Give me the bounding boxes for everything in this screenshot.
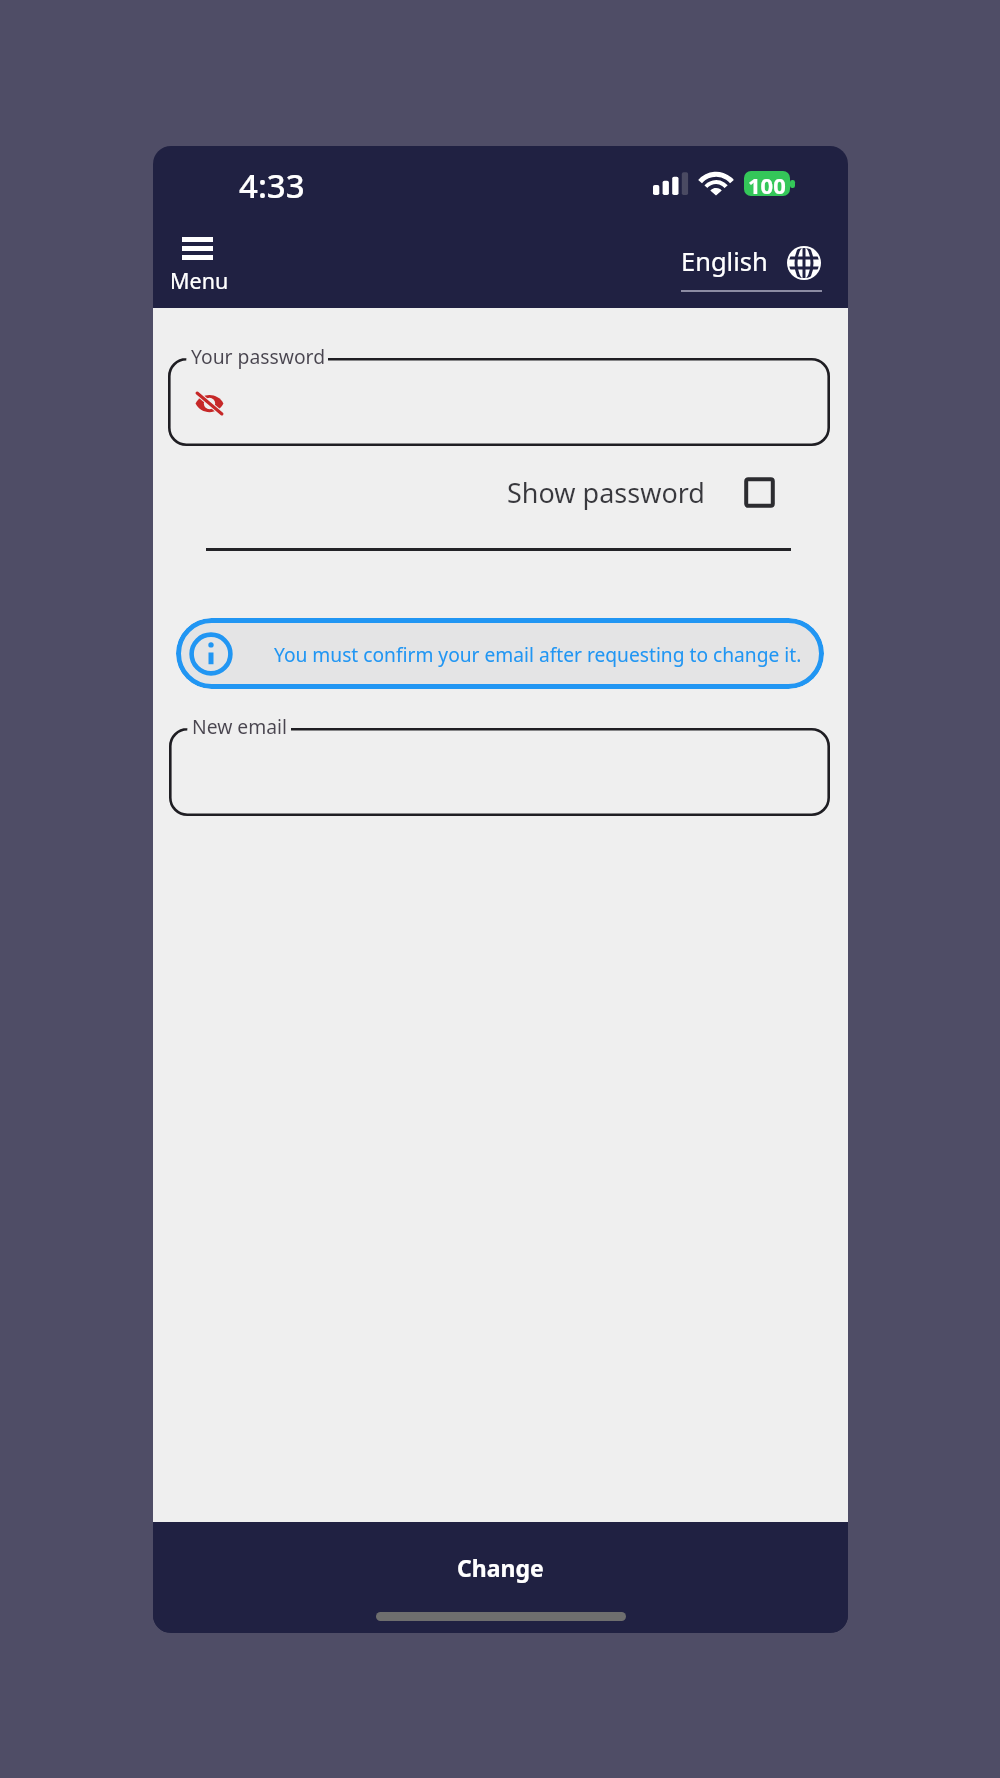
button[interactable]: Change [153,1522,848,1600]
button[interactable]: Menu [165,233,241,299]
staticText: English [681,244,768,279]
staticText: You must confirm your email after reques… [274,641,802,667]
staticText: 100 [748,171,786,195]
button[interactable]: Toggle password visibility [168,358,830,446]
button[interactable] [169,728,830,816]
button[interactable]: You must confirm your email after reques… [176,618,824,689]
staticText: Show password [507,474,705,511]
staticText: New email [192,713,288,739]
staticText: Change [457,1552,544,1583]
button[interactable]: Toggle password visibility [184,382,235,425]
staticText: Your password [191,343,326,369]
staticText: 4:33 [239,163,305,208]
button[interactable]: Show password [502,469,780,516]
other: Change language [787,246,821,280]
button[interactable]: English [681,226,822,292]
staticText: Menu [170,266,229,295]
